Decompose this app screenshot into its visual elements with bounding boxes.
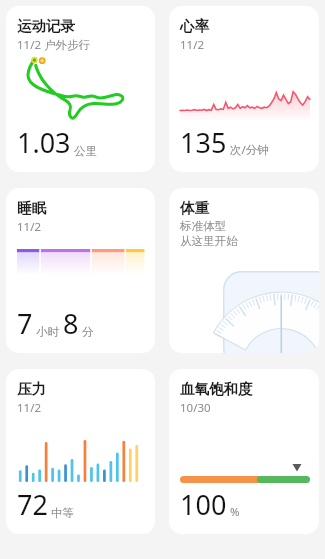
staticText: 公里 [74, 144, 97, 158]
staticText: 11/2 户外步行 [17, 37, 91, 53]
button[interactable]: 压力 72 中等 [6, 369, 155, 534]
staticText: 10/30 [180, 400, 211, 416]
staticText: 小时 [36, 325, 59, 339]
staticText: 运动记录 [17, 17, 75, 35]
staticText: 135 [180, 124, 227, 161]
staticText: 体重 [180, 199, 209, 217]
staticText: 中等 [51, 506, 74, 520]
staticText: 压力 [17, 380, 46, 398]
staticText: 心率 [180, 17, 209, 35]
staticText: 睡眠 [17, 199, 46, 217]
button[interactable]: 心率 135 次每分钟 [169, 6, 319, 172]
staticText: % [230, 504, 240, 520]
staticText: 100 [180, 486, 227, 523]
staticText: 11/2 [180, 37, 205, 53]
button[interactable]: 睡眠 7 小时 8 分 [6, 188, 155, 353]
staticText: 从这里开始 [180, 234, 238, 248]
button[interactable]: 运动记录 1.03 公里 [6, 6, 155, 172]
button[interactable]: 血氧饱和度 100% [169, 369, 319, 534]
staticText: 标准体型 [180, 219, 226, 233]
staticText: 11/2 [17, 219, 42, 235]
staticText: 次/分钟 [230, 142, 269, 158]
staticText: 1.03 [17, 124, 71, 161]
staticText: 72 [17, 486, 48, 523]
staticText: 7 [17, 305, 33, 342]
button[interactable]: 体重 标准体型 [169, 188, 319, 353]
staticText: 11/2 [17, 400, 42, 416]
staticText: 8 [63, 305, 79, 342]
staticText: 分 [82, 325, 94, 339]
staticText: 血氧饱和度 [180, 380, 253, 398]
